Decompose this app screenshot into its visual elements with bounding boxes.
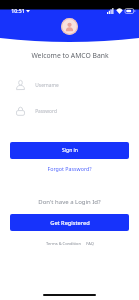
- staticText: FAQ: [86, 241, 94, 246]
- button[interactable]: FAQ: [85, 239, 95, 248]
- staticText: Get Registered: [50, 219, 90, 227]
- staticText: Forgot Password?: [47, 165, 92, 172]
- other: Profile: [61, 18, 78, 35]
- staticText: Password: [35, 108, 57, 115]
- button[interactable]: Get Registered: [10, 214, 129, 231]
- button[interactable]: Forgot Password?: [41, 163, 98, 174]
- button[interactable]: Password: [0, 104, 139, 118]
- staticText: Don't have a Login Id?: [38, 198, 101, 206]
- staticText: Terms & Condition: [46, 241, 81, 246]
- staticText: 10:51: [11, 7, 25, 14]
- button[interactable]: Sign in: [10, 142, 129, 159]
- staticText: Welcome to AMCO Bank: [31, 51, 109, 60]
- button[interactable]: Username: [0, 78, 139, 92]
- staticText: Sign in: [62, 147, 78, 154]
- staticText: Username: [35, 82, 59, 89]
- button[interactable]: Terms & Condition: [45, 239, 82, 248]
